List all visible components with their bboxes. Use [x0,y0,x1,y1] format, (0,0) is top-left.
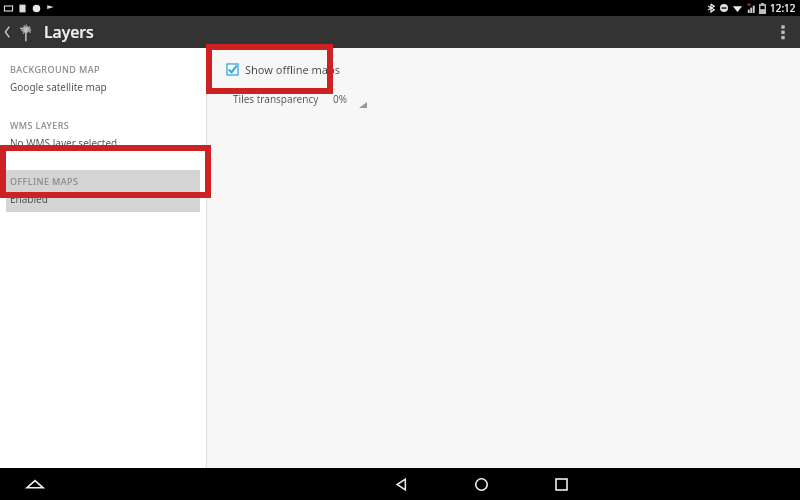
staticText: WMS LAYERS [10,119,70,131]
button[interactable]: Back [371,468,431,500]
button[interactable]: More options [766,16,800,48]
button[interactable]: WMS LAYERS [0,114,206,156]
staticText: OFFLINE MAPS [10,175,79,187]
staticText: No WMS layer selected [10,136,118,150]
button[interactable]: Show offline maps [223,58,345,81]
button[interactable]: Navigate up [0,16,40,48]
button[interactable]: Show navigation [22,471,48,497]
staticText: Google satellite map [10,80,107,94]
staticText: 12:12 [770,1,796,15]
button[interactable]: BACKGROUND MAP [0,58,206,100]
button[interactable]: OFFLINE MAPS [6,170,200,212]
staticText: Tiles transparency [233,92,319,106]
staticText: 0% [333,92,348,106]
button[interactable]: Recent apps [531,468,591,500]
staticText: Enabled [10,192,48,206]
staticText: Show offline maps [245,62,341,77]
staticText: Layers [44,21,94,43]
button[interactable]: 0% [331,90,367,108]
staticText: BACKGROUND MAP [10,63,100,75]
button[interactable]: Home [451,468,511,500]
